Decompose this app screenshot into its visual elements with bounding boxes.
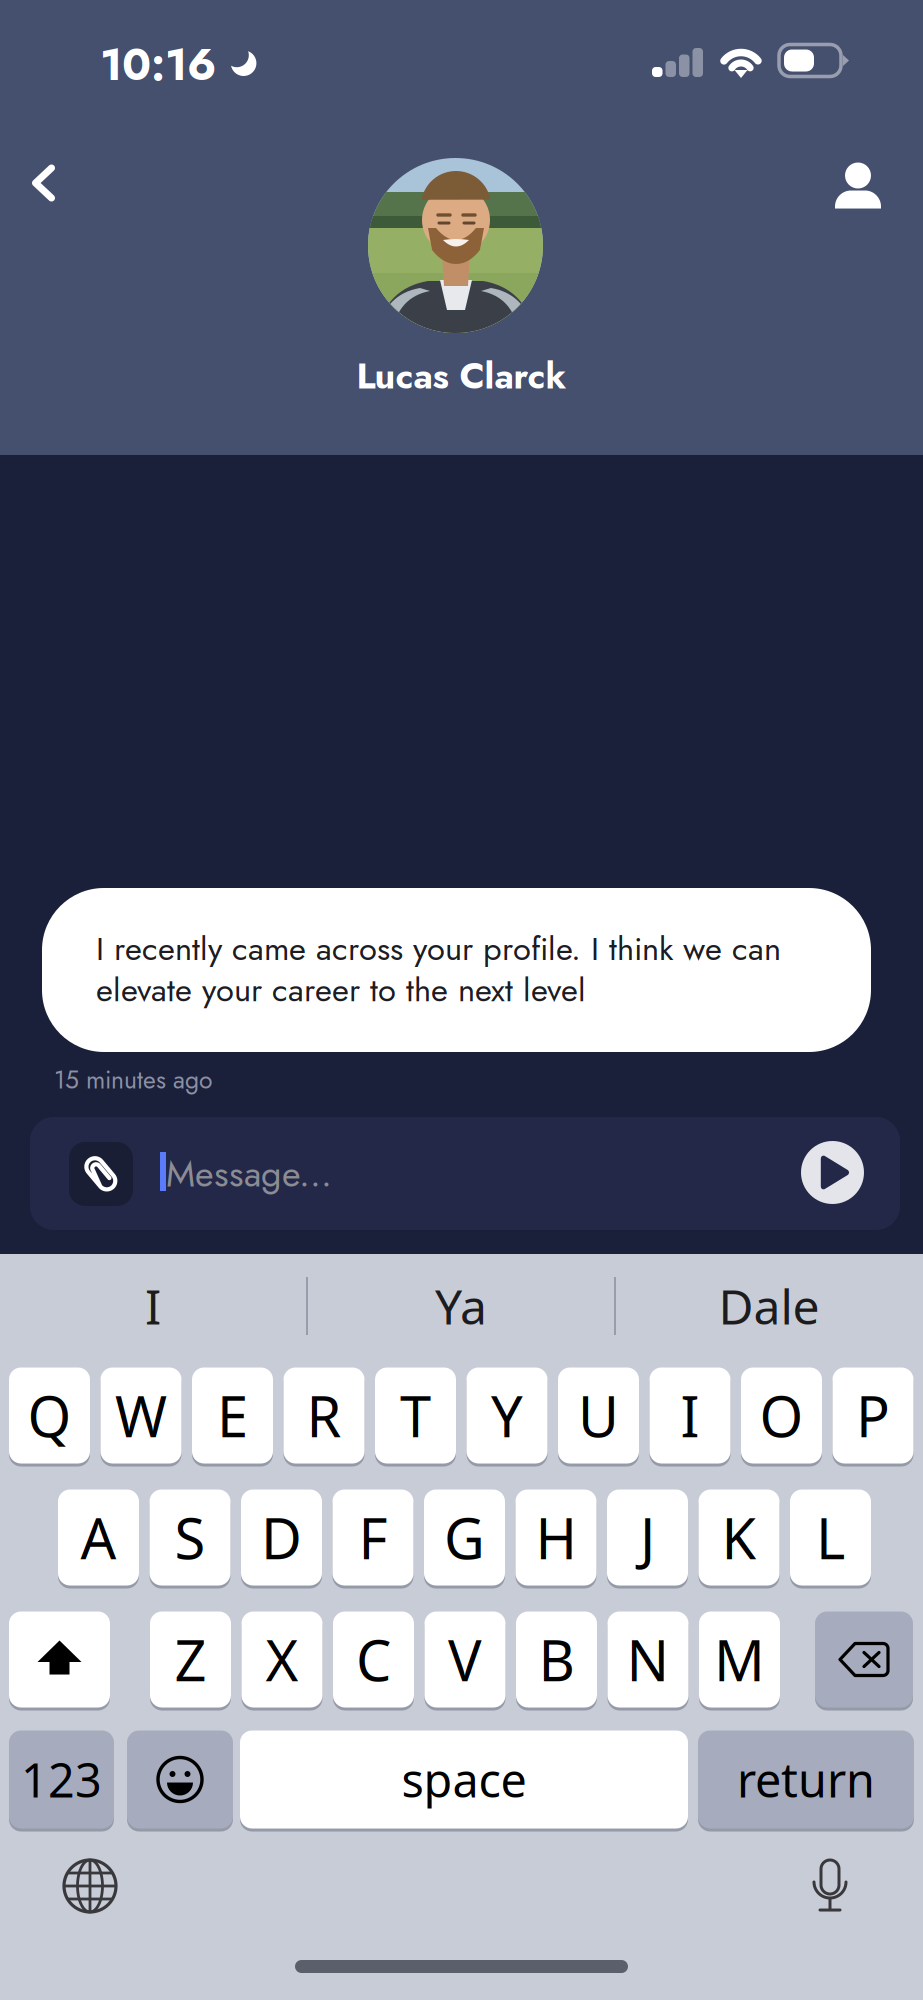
button[interactable] xyxy=(815,1610,913,1709)
button[interactable]: Q xyxy=(9,1366,90,1465)
staticText: F xyxy=(358,1500,387,1575)
staticText: I recently came across your profile. I t… xyxy=(96,925,781,1013)
staticText: D xyxy=(261,1500,302,1575)
staticText: space xyxy=(401,1748,526,1810)
button[interactable]: I xyxy=(649,1366,730,1465)
staticText: U xyxy=(578,1378,619,1453)
button[interactable]: T xyxy=(375,1366,456,1465)
staticText: Lucas Clarck xyxy=(356,350,566,402)
staticText: Message... xyxy=(166,1148,332,1200)
button[interactable]: H xyxy=(515,1488,596,1587)
button[interactable]: Next keyboard xyxy=(62,1858,118,1914)
button[interactable]: O xyxy=(741,1366,822,1465)
staticText: K xyxy=(721,1500,756,1575)
button[interactable]: B xyxy=(516,1610,597,1709)
staticText: Z xyxy=(174,1622,206,1697)
staticText: X xyxy=(265,1622,298,1697)
button[interactable]: D xyxy=(241,1488,322,1587)
button[interactable] xyxy=(9,1610,110,1709)
button[interactable]: P xyxy=(832,1366,913,1465)
button[interactable]: L xyxy=(790,1488,871,1587)
staticText: I xyxy=(680,1378,699,1453)
button[interactable]: C xyxy=(333,1610,414,1709)
staticText: I xyxy=(145,1274,161,1338)
button[interactable]: V xyxy=(424,1610,505,1709)
staticText: L xyxy=(816,1500,845,1575)
staticText: H xyxy=(535,1500,576,1575)
button[interactable]: R xyxy=(283,1366,364,1465)
button[interactable]: W xyxy=(100,1366,181,1465)
button[interactable]: space xyxy=(240,1729,688,1830)
staticText: Ya xyxy=(435,1274,487,1338)
button[interactable]: G xyxy=(424,1488,505,1587)
button[interactable]: K xyxy=(698,1488,779,1587)
staticText: R xyxy=(306,1378,341,1453)
staticText: M xyxy=(714,1622,765,1697)
staticText: Q xyxy=(27,1378,71,1453)
button[interactable]: M xyxy=(699,1610,780,1709)
button[interactable]: X xyxy=(241,1610,322,1709)
staticText: B xyxy=(538,1622,574,1697)
button[interactable]: Z xyxy=(150,1610,231,1709)
staticText: T xyxy=(400,1378,431,1453)
staticText: J xyxy=(640,1500,655,1575)
button[interactable]: N xyxy=(607,1610,688,1709)
staticText: E xyxy=(217,1378,248,1453)
staticText: V xyxy=(448,1622,482,1697)
button[interactable]: Back xyxy=(0,139,88,227)
button[interactable] xyxy=(127,1729,233,1830)
button[interactable]: Contact profile xyxy=(814,133,902,221)
button[interactable]: F xyxy=(332,1488,413,1587)
staticText: Dale xyxy=(718,1274,819,1338)
staticText: 10:16 xyxy=(100,33,216,97)
button[interactable]: J xyxy=(607,1488,688,1587)
staticText: P xyxy=(856,1378,890,1453)
button[interactable]: Dictate xyxy=(805,1856,855,1914)
staticText: S xyxy=(174,1500,205,1575)
button[interactable]: E xyxy=(192,1366,273,1465)
button[interactable]: Send message xyxy=(801,1141,864,1204)
button[interactable]: 123 xyxy=(9,1729,114,1830)
staticText: A xyxy=(80,1500,116,1575)
button[interactable]: return xyxy=(698,1729,914,1830)
staticText: W xyxy=(115,1378,167,1453)
staticText: G xyxy=(444,1500,485,1575)
button[interactable]: Attach file xyxy=(69,1142,133,1206)
staticText: 15 minutes ago xyxy=(54,1062,212,1098)
button[interactable]: S xyxy=(149,1488,230,1587)
staticText: Y xyxy=(491,1378,523,1453)
staticText: O xyxy=(759,1378,803,1453)
staticText: C xyxy=(356,1622,391,1697)
button[interactable]: U xyxy=(558,1366,639,1465)
staticText: 123 xyxy=(21,1748,102,1810)
staticText: N xyxy=(626,1622,669,1697)
button[interactable]: I xyxy=(0,1254,306,1358)
button[interactable]: Ya xyxy=(308,1254,614,1358)
button[interactable]: A xyxy=(58,1488,139,1587)
button[interactable]: Y xyxy=(466,1366,547,1465)
staticText: return xyxy=(737,1748,875,1810)
button[interactable]: Dale xyxy=(616,1254,922,1358)
